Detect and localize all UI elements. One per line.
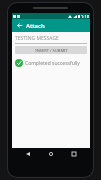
staticText: TESTING MESSAGE	[15, 35, 59, 42]
button[interactable]: Back	[21, 148, 35, 160]
staticText: INSERT / SUBMIT	[35, 48, 68, 53]
staticText: Completed successfully	[25, 60, 80, 67]
button[interactable]: INSERT / SUBMIT	[15, 46, 87, 54]
button[interactable]: Completed successfully	[15, 59, 87, 67]
staticText: 1:18	[81, 14, 89, 19]
button[interactable]: TESTING MESSAGE	[15, 35, 87, 44]
button[interactable]: Navigate up	[15, 21, 24, 30]
button[interactable]: Home	[44, 148, 58, 160]
button[interactable]: Recent apps	[67, 148, 81, 160]
staticText: Attach	[26, 22, 45, 30]
